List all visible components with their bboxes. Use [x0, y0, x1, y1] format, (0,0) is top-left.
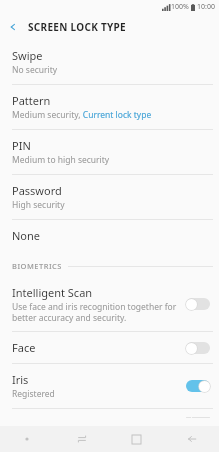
- staticText: Registered: [12, 388, 55, 400]
- staticText: Password: [12, 183, 62, 198]
- staticText: BIOMETRICS: [12, 261, 62, 271]
- staticText: Iris: [12, 372, 29, 387]
- staticText: SCREEN LOCK TYPE: [28, 20, 127, 34]
- staticText: Use face and iris recognition together f…: [12, 301, 177, 323]
- button[interactable]: Intelligent Scan: [0, 277, 219, 331]
- button[interactable]: Back: [0, 14, 26, 40]
- staticText: None: [12, 228, 41, 243]
- button[interactable]: Recents: [54, 426, 109, 452]
- staticText: Face: [12, 340, 36, 355]
- staticText: No security: [12, 64, 58, 76]
- staticText: Pattern: [12, 93, 51, 108]
- staticText: 100%: [171, 2, 189, 12]
- button[interactable]: On: [185, 379, 211, 393]
- staticText: Swipe: [12, 48, 43, 63]
- staticText: PIN: [12, 138, 31, 153]
- button[interactable]: Iris: [0, 364, 219, 408]
- button[interactable]: Pattern: [0, 85, 219, 129]
- button[interactable]: Swipe: [0, 40, 219, 84]
- staticText: Medium security, Current lock type: [12, 109, 152, 121]
- button[interactable]: Face: [0, 332, 219, 363]
- button[interactable]: Password: [0, 175, 219, 219]
- button[interactable]: Off: [185, 417, 211, 418]
- staticText: High security: [12, 199, 65, 211]
- button[interactable]: Off: [185, 341, 211, 355]
- button[interactable]: None: [0, 220, 219, 251]
- button[interactable]: Home: [109, 426, 164, 452]
- button[interactable]: Back: [164, 426, 219, 452]
- staticText: 10:00: [197, 2, 215, 12]
- staticText: Intelligent Scan: [12, 285, 93, 300]
- button[interactable]: Off: [185, 297, 211, 311]
- staticText: Medium to high security: [12, 154, 110, 166]
- button[interactable]: PIN: [0, 130, 219, 174]
